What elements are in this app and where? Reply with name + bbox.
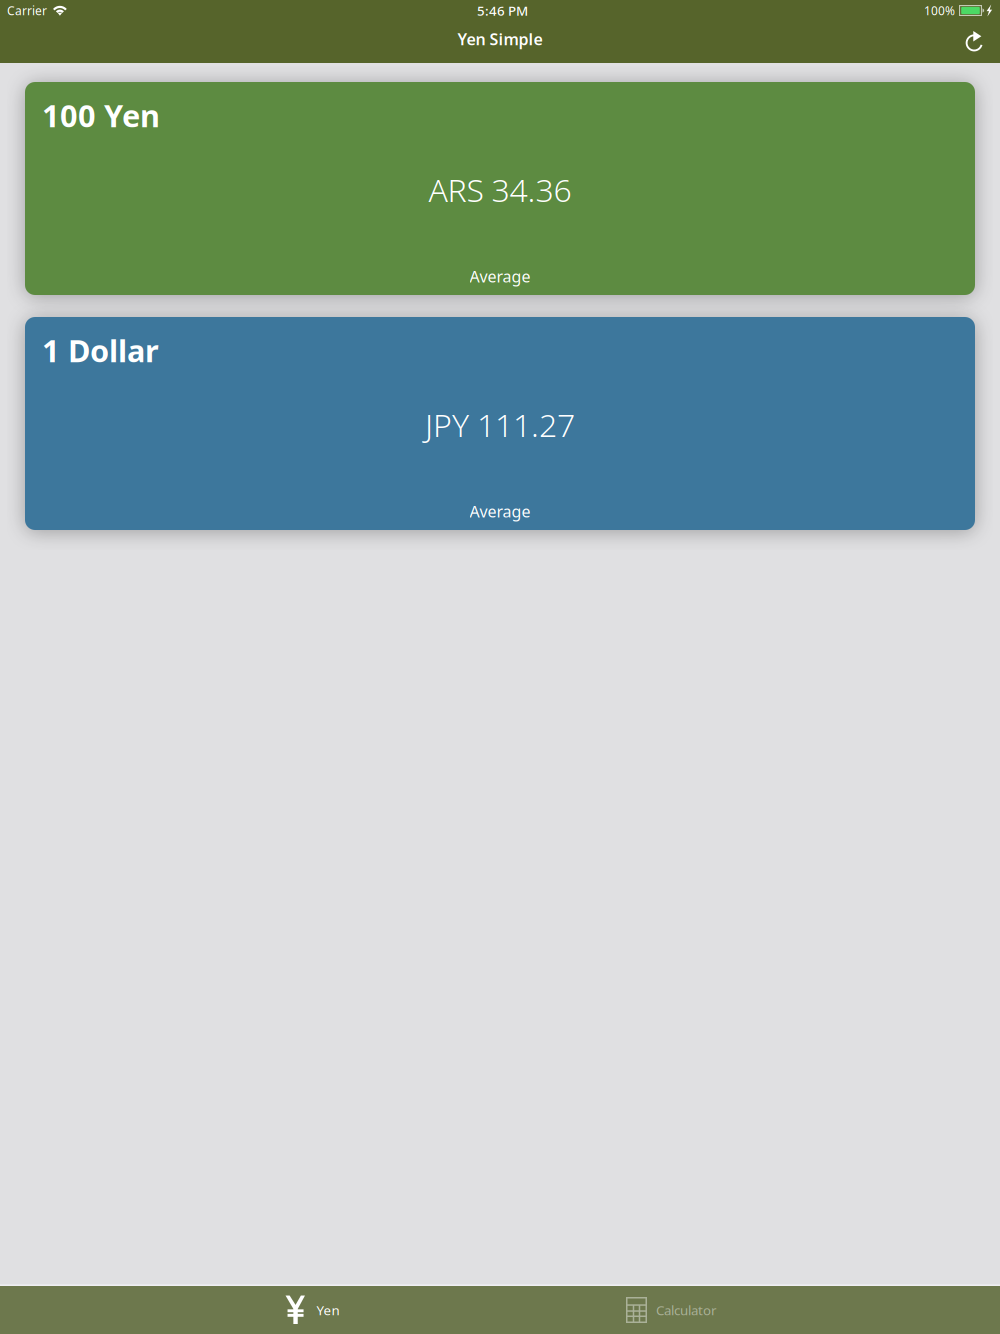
staticText: 100% <box>924 2 955 18</box>
staticText: 100 Yen <box>42 95 160 136</box>
staticText: Average <box>469 266 530 287</box>
staticText: Yen Simple <box>457 28 542 50</box>
staticText: Average <box>469 501 530 522</box>
button[interactable]: Calculator <box>604 1286 739 1334</box>
staticText: Carrier <box>7 2 47 18</box>
staticText: JPY 111.27 <box>425 403 575 446</box>
staticText: Calculator <box>656 1301 717 1319</box>
staticText: Yen <box>316 1301 339 1319</box>
button[interactable]: Yen <box>265 1286 360 1334</box>
staticText: ARS 34.36 <box>428 168 571 211</box>
button[interactable]: Refresh <box>965 32 1000 57</box>
button[interactable]: 1 Dollar <box>25 317 975 530</box>
staticText: 5:46 PM <box>477 2 528 19</box>
staticText: 1 Dollar <box>42 330 159 371</box>
button[interactable]: 100 Yen <box>25 82 975 295</box>
